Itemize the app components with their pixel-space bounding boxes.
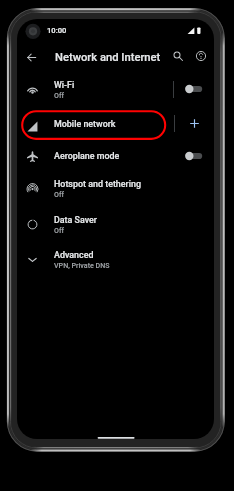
button[interactable]: Toggle Wi-Fi [180, 71, 206, 107]
button[interactable]: Mobile network [17, 107, 214, 140]
staticText: VPN, Private DNS [54, 261, 110, 269]
button[interactable]: Data Saver [17, 205, 214, 243]
staticText: Network and Internet [55, 51, 161, 64]
staticText: Aeroplane mode [54, 151, 120, 161]
staticText: Advanced [54, 250, 94, 260]
staticText: Wi-Fi [54, 80, 75, 90]
button[interactable]: Add network [182, 107, 206, 140]
staticText: Hotspot and tethering [54, 179, 141, 189]
staticText: Mobile network [54, 119, 116, 129]
staticText: Off [54, 190, 64, 198]
button[interactable]: Help [191, 46, 211, 66]
button[interactable]: Toggle Aeroplane mode [180, 140, 206, 172]
button[interactable]: Back [21, 47, 41, 67]
staticText: Off [54, 91, 64, 99]
button[interactable]: Aeroplane mode [17, 140, 214, 172]
button[interactable]: Wi-Fi [17, 71, 214, 107]
button[interactable]: Hotspot and tethering [17, 172, 214, 205]
staticText: Off [54, 226, 64, 234]
button[interactable]: Advanced [17, 243, 214, 276]
staticText: Data Saver [54, 215, 97, 225]
staticText: 10:00 [47, 26, 67, 35]
button[interactable]: Search [168, 46, 188, 66]
